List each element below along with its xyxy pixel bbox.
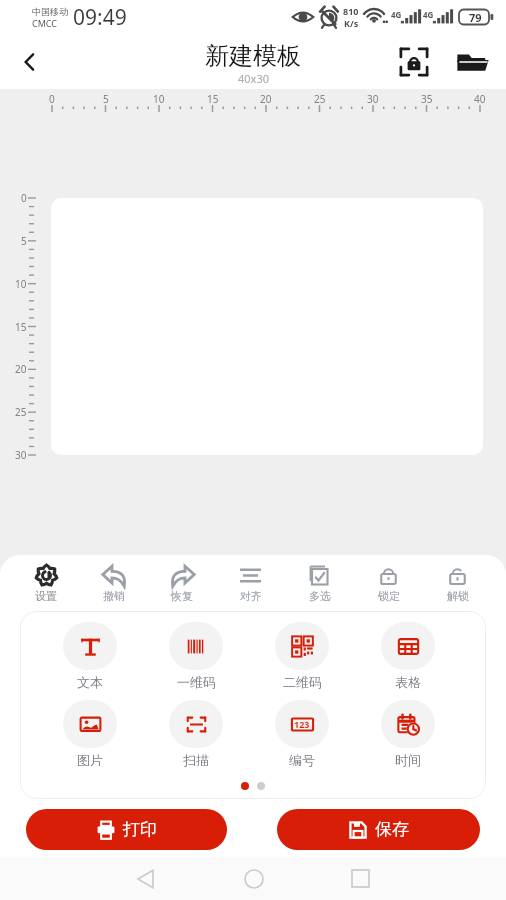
staticText: 一维码 [177, 674, 216, 690]
staticText: 中国移动 [32, 6, 68, 17]
staticText: 40 [474, 92, 486, 106]
staticText: 表格 [395, 674, 421, 690]
staticText: 20 [15, 362, 27, 376]
staticText: 5 [21, 234, 27, 248]
staticText: 解锁 [447, 589, 469, 603]
staticText: 时间 [395, 752, 421, 768]
staticText: 10 [15, 277, 27, 291]
staticText: 图片 [77, 752, 103, 768]
staticText: 15 [15, 320, 27, 334]
staticText: 09:49 [73, 3, 127, 32]
button[interactable]: 恢复 [148, 555, 216, 611]
staticText: 二维码 [283, 674, 322, 690]
button[interactable]: 文本 [37, 617, 143, 695]
staticText: 撤销 [103, 589, 125, 603]
button[interactable]: 时间 [355, 695, 461, 773]
button[interactable]: 图片 [37, 695, 143, 773]
staticText: 79 [469, 10, 482, 25]
staticText: 4G [391, 9, 402, 20]
staticText: 4G [423, 9, 434, 20]
staticText: 设置 [35, 589, 57, 603]
button[interactable]: 扫描 [143, 695, 249, 773]
staticText: K/s [344, 17, 359, 29]
button[interactable]: Lock canvas [391, 39, 437, 85]
staticText: 40x30 [238, 71, 269, 86]
staticText: 25 [15, 405, 27, 419]
staticText: 10 [153, 92, 165, 106]
staticText: 5 [103, 92, 109, 106]
staticText: 30 [15, 448, 27, 462]
staticText: 锁定 [378, 589, 400, 603]
button[interactable]: 表格 [355, 617, 461, 695]
staticText: 35 [421, 92, 433, 106]
button[interactable]: 二维码 [249, 617, 355, 695]
button[interactable]: Open folder [450, 39, 496, 85]
button[interactable]: Recent apps [307, 857, 414, 900]
staticText: 扫描 [183, 752, 209, 768]
button[interactable]: Back [92, 857, 200, 900]
button[interactable]: Back [6, 38, 54, 86]
button[interactable]: 解锁 [423, 555, 492, 611]
button[interactable]: 123 [249, 695, 355, 773]
button[interactable]: 多选 [285, 555, 354, 611]
button[interactable]: 锁定 [354, 555, 423, 611]
staticText: 15 [207, 92, 219, 106]
staticText: 30 [367, 92, 379, 106]
button[interactable]: 打印 [26, 809, 227, 850]
staticText: CMCC [32, 17, 58, 29]
staticText: 新建模板 [205, 41, 301, 71]
staticText: 123 [294, 718, 310, 730]
button[interactable]: 撤销 [80, 555, 148, 611]
button[interactable]: Home [200, 857, 307, 900]
staticText: 多选 [309, 589, 331, 603]
staticText: 文本 [77, 674, 103, 690]
staticText: 对齐 [240, 589, 262, 603]
staticText: 保存 [375, 819, 409, 840]
staticText: 25 [314, 92, 326, 106]
staticText: 0 [49, 92, 55, 106]
staticText: 810 [343, 5, 359, 17]
staticText: 编号 [289, 752, 315, 768]
staticText: 0 [21, 191, 27, 205]
staticText: 打印 [123, 819, 157, 840]
button[interactable]: 一维码 [143, 617, 249, 695]
staticText: 恢复 [171, 589, 193, 603]
button[interactable]: 设置 [12, 555, 80, 611]
staticText: 20 [260, 92, 272, 106]
button[interactable]: 保存 [277, 809, 480, 850]
button[interactable]: 对齐 [216, 555, 285, 611]
